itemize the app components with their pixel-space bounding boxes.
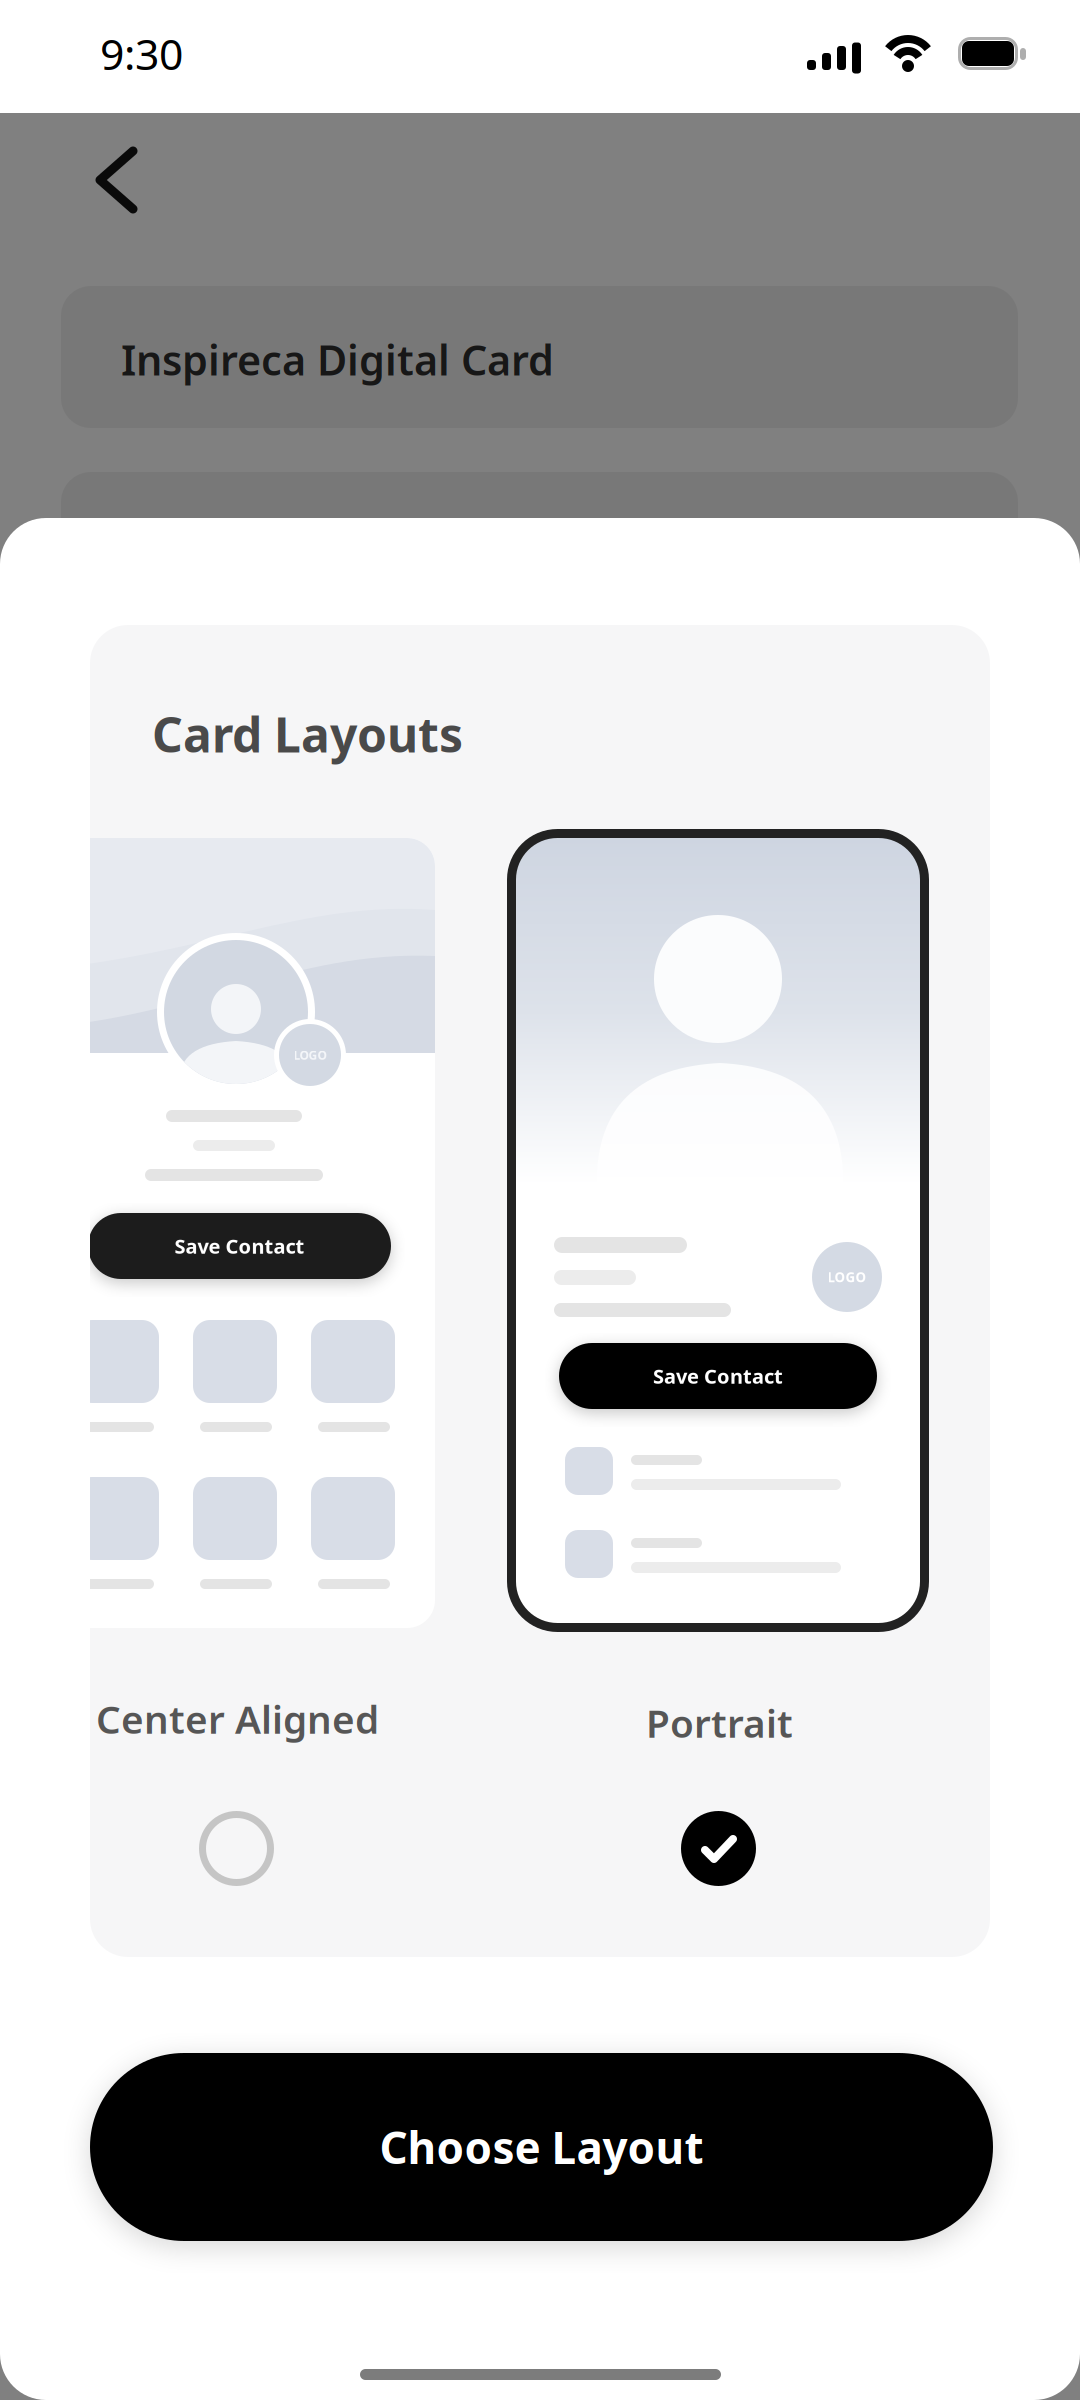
staticText: Portrait (646, 1697, 793, 1748)
staticText: Card Layouts (152, 702, 463, 766)
button[interactable]: Select Center Aligned (199, 1811, 274, 1886)
button[interactable]: LOGO (507, 829, 929, 1632)
staticText: Save Contact (653, 1363, 783, 1389)
button[interactable]: LOGO (90, 838, 435, 1628)
staticText: Inspireca Digital Card (121, 332, 554, 387)
button[interactable]: Back (78, 135, 162, 235)
staticText: 9:30 (100, 25, 183, 82)
staticText: LOGO (293, 1047, 326, 1063)
staticText: Save Contact (174, 1233, 304, 1259)
staticText: Center Aligned (96, 1693, 379, 1744)
staticText: LOGO (827, 1268, 866, 1286)
staticText: Choose Layout (379, 2118, 703, 2176)
button[interactable]: Select Portrait (681, 1811, 756, 1886)
button[interactable]: Choose Layout (90, 2053, 993, 2241)
